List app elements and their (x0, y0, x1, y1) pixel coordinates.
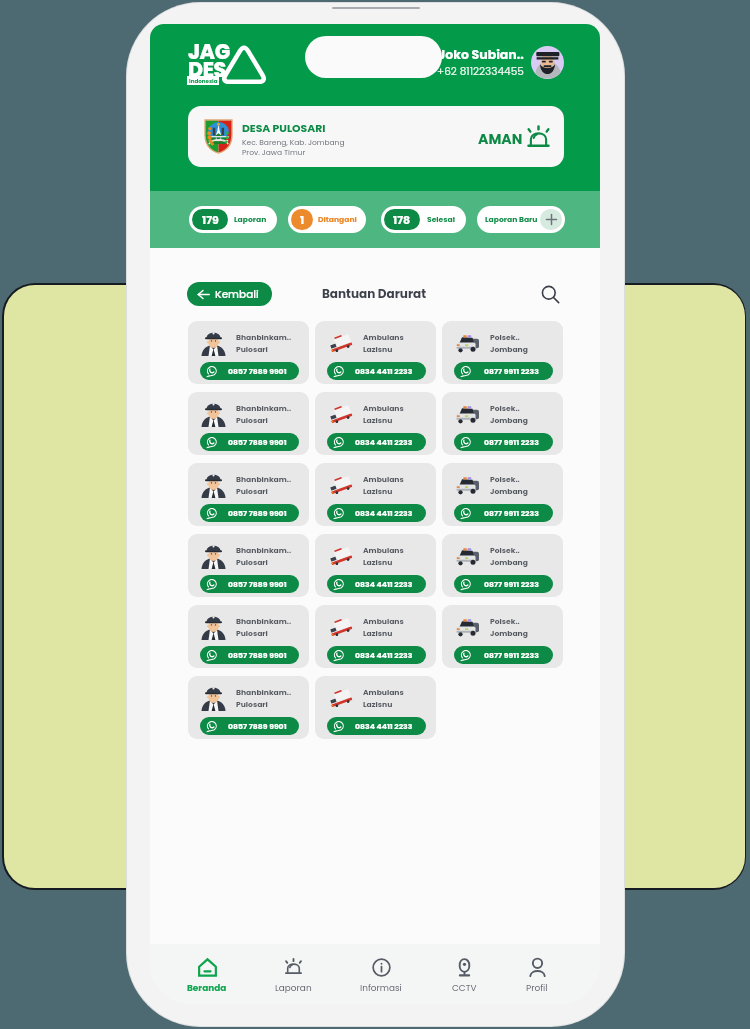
staticText: 0857 7889 9901 (228, 650, 287, 661)
staticText: Lazisnu (363, 699, 393, 710)
staticText: Lazisnu (363, 557, 393, 568)
staticText: Ambulans (363, 474, 404, 485)
staticText: Bantuan Darurat (274, 285, 474, 302)
button[interactable]: Bhanbinkam.. (188, 534, 309, 597)
button[interactable]: Bhanbinkam.. (188, 392, 309, 455)
button[interactable]: CCTV (434, 954, 494, 998)
staticText: 0857 7889 9901 (228, 366, 287, 377)
staticText: Pulosari (236, 699, 268, 710)
staticText: 0877 9911 2233 (484, 508, 539, 519)
button[interactable]: 0877 9911 2233 (454, 504, 553, 522)
button[interactable]: Search (539, 283, 561, 305)
staticText: 0834 4411 2233 (355, 437, 413, 448)
staticText: CCTV (452, 982, 477, 994)
staticText: Profil (526, 982, 548, 994)
button[interactable]: 0877 9911 2233 (454, 433, 553, 451)
button[interactable]: Ambulans (315, 676, 436, 739)
staticText: Bhanbinkam.. (236, 545, 292, 556)
staticText: Prov. Jawa Timur (242, 147, 306, 157)
button[interactable]: Kembali (187, 282, 272, 306)
staticText: +62 81122334455 (437, 64, 524, 79)
staticText: Lazisnu (363, 344, 393, 355)
button[interactable]: Ambulans (315, 534, 436, 597)
button[interactable]: Bhanbinkam.. (188, 463, 309, 526)
button[interactable]: Polsek.. (442, 392, 563, 455)
staticText: Ambulans (363, 403, 404, 414)
staticText: Ambulans (363, 332, 404, 343)
staticText: 0877 9911 2233 (484, 366, 539, 377)
button[interactable]: Informasi (351, 954, 411, 998)
staticText: DES (188, 55, 226, 84)
staticText: Joko Subian.. (438, 46, 524, 63)
button[interactable]: Ambulans (315, 605, 436, 668)
staticText: Jombang (490, 486, 528, 497)
button[interactable]: 0834 4411 2233 (327, 717, 426, 735)
staticText: Lazisnu (363, 486, 393, 497)
button[interactable]: Ambulans (315, 321, 436, 384)
button[interactable]: Bhanbinkam.. (188, 676, 309, 739)
staticText: Ditangani (318, 214, 357, 225)
staticText: Bhanbinkam.. (236, 474, 292, 485)
staticText: Pulosari (236, 486, 268, 497)
staticText: Jombang (490, 344, 528, 355)
button[interactable]: 0857 7889 9901 (200, 717, 299, 735)
button[interactable]: 0857 7889 9901 (200, 433, 299, 451)
staticText: 0834 4411 2233 (355, 579, 413, 590)
staticText: Pulosari (236, 628, 268, 639)
staticText: Informasi (360, 982, 402, 994)
button[interactable]: Laporan Baru (477, 206, 565, 233)
staticText: 0834 4411 2233 (355, 721, 413, 732)
button[interactable]: 0834 4411 2233 (327, 575, 426, 593)
staticText: Bhanbinkam.. (236, 403, 292, 414)
button[interactable]: Polsek.. (442, 321, 563, 384)
button[interactable]: Profil (507, 954, 567, 998)
button[interactable]: 0857 7889 9901 (200, 362, 299, 380)
button[interactable]: 0857 7889 9901 (200, 646, 299, 664)
staticText: 0877 9911 2233 (484, 437, 539, 448)
staticText: Kembali (215, 287, 259, 302)
staticText: Polsek.. (490, 403, 520, 414)
staticText: 0834 4411 2233 (355, 508, 413, 519)
staticText: 0834 4411 2233 (355, 366, 413, 377)
button[interactable]: Bhanbinkam.. (188, 605, 309, 668)
button[interactable]: Laporan (263, 954, 323, 998)
button[interactable]: Ambulans (315, 463, 436, 526)
button[interactable]: Bhanbinkam.. (188, 321, 309, 384)
staticText: Pulosari (236, 344, 268, 355)
button[interactable]: 0857 7889 9901 (200, 575, 299, 593)
staticText: Selesai (427, 214, 455, 225)
staticText: 1 (300, 212, 305, 227)
button[interactable]: Beranda (177, 954, 237, 998)
button[interactable]: 0834 4411 2233 (327, 646, 426, 664)
staticText: DESA PULOSARI (242, 121, 326, 136)
button[interactable]: 0877 9911 2233 (454, 362, 553, 380)
button[interactable]: Ambulans (315, 392, 436, 455)
button[interactable]: 1 (288, 206, 366, 233)
button[interactable]: Polsek.. (442, 463, 563, 526)
staticText: Lazisnu (363, 628, 393, 639)
staticText: Pulosari (236, 557, 268, 568)
button[interactable]: 0857 7889 9901 (200, 504, 299, 522)
staticText: Bhanbinkam.. (236, 332, 292, 343)
staticText: 0877 9911 2233 (484, 650, 539, 661)
staticText: Bhanbinkam.. (236, 616, 292, 627)
staticText: 0857 7889 9901 (228, 721, 287, 732)
button[interactable]: 0877 9911 2233 (454, 575, 553, 593)
staticText: AMAN (478, 129, 523, 149)
staticText: Kec. Bareng, Kab. Jombang (242, 137, 345, 147)
button[interactable]: 0834 4411 2233 (327, 362, 426, 380)
staticText: Ambulans (363, 687, 404, 698)
staticText: 178 (393, 212, 411, 227)
staticText: Jombang (490, 415, 528, 426)
button[interactable]: Polsek.. (442, 605, 563, 668)
staticText: Polsek.. (490, 616, 520, 627)
staticText: Laporan (275, 982, 312, 994)
button[interactable]: Polsek.. (442, 534, 563, 597)
button[interactable]: 178 (381, 206, 466, 233)
staticText: 0857 7889 9901 (228, 437, 287, 448)
button[interactable]: 0877 9911 2233 (454, 646, 553, 664)
button[interactable]: 179 (189, 206, 277, 233)
button[interactable]: DESA PULOSARI (188, 106, 564, 167)
button[interactable]: 0834 4411 2233 (327, 433, 426, 451)
button[interactable]: 0834 4411 2233 (327, 504, 426, 522)
